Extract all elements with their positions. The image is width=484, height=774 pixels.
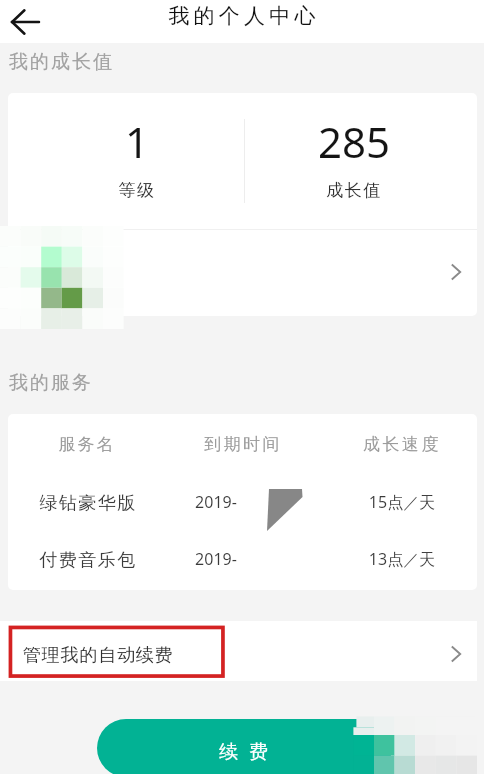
staticText: 13点／天: [292, 548, 484, 570]
staticText: 2019-: [106, 548, 326, 570]
staticText: 285: [244, 113, 464, 170]
staticText: 管理我的自动续费: [23, 644, 174, 667]
staticText: 我的个人中心: [134, 3, 354, 29]
staticText: 服务名: [0, 434, 197, 455]
staticText: 续 费: [135, 738, 355, 764]
staticText: 等级: [27, 180, 247, 201]
button[interactable]: [8, 230, 477, 316]
button[interactable]: [0, 621, 477, 681]
staticText: 付费音乐包: [0, 549, 198, 572]
staticText: 到期时间: [133, 434, 353, 455]
button[interactable]: [97, 719, 392, 774]
staticText: 我的服务: [8, 371, 92, 395]
staticText: 15点／天: [292, 491, 484, 513]
staticText: 绿钻豪华版: [0, 492, 198, 515]
staticText: 2019-: [106, 491, 326, 513]
staticText: 成长值: [244, 180, 464, 201]
button[interactable]: Back: [5, 2, 45, 42]
staticText: 1: [27, 113, 247, 170]
staticText: 成长速度: [292, 434, 484, 455]
staticText: 我的成长值: [8, 50, 113, 74]
